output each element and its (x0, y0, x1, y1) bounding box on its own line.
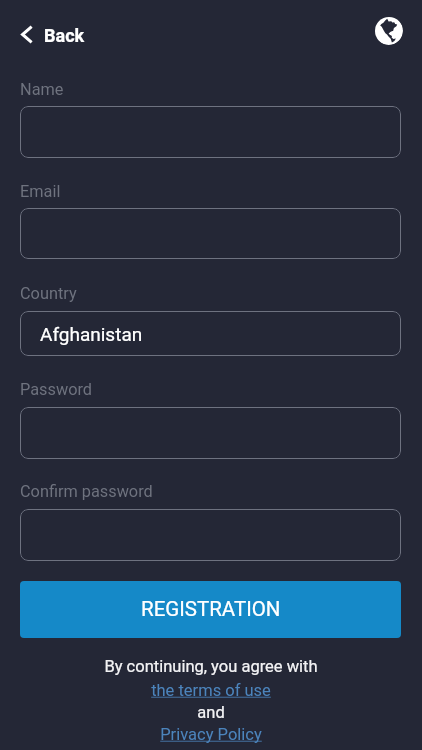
button[interactable]: Back (15, 18, 91, 51)
button[interactable]: REGISTRATION (20, 581, 401, 638)
button[interactable]: By continuing, you agree with (104, 657, 318, 676)
staticText: Confirm password (20, 482, 153, 501)
staticText: Password (20, 380, 92, 399)
staticText: Email (20, 182, 61, 201)
button[interactable]: the terms of use (151, 681, 271, 700)
staticText: Name (20, 80, 64, 99)
button[interactable]: Change language (374, 16, 403, 45)
button[interactable] (20, 509, 401, 561)
button[interactable]: Afghanistan (20, 311, 401, 356)
staticText: Country (20, 284, 77, 303)
button[interactable] (20, 407, 401, 459)
staticText: REGISTRATION (141, 597, 281, 621)
staticText: Back (44, 25, 85, 46)
button[interactable]: and (197, 703, 225, 722)
button[interactable]: Privacy Policy (160, 725, 262, 744)
staticText: and (197, 703, 225, 722)
button[interactable] (20, 208, 401, 259)
button[interactable] (20, 106, 401, 158)
staticText: Privacy Policy (160, 725, 262, 744)
staticText: By continuing, you agree with (104, 657, 318, 676)
staticText: the terms of use (151, 681, 271, 700)
staticText: Afghanistan (40, 323, 143, 345)
